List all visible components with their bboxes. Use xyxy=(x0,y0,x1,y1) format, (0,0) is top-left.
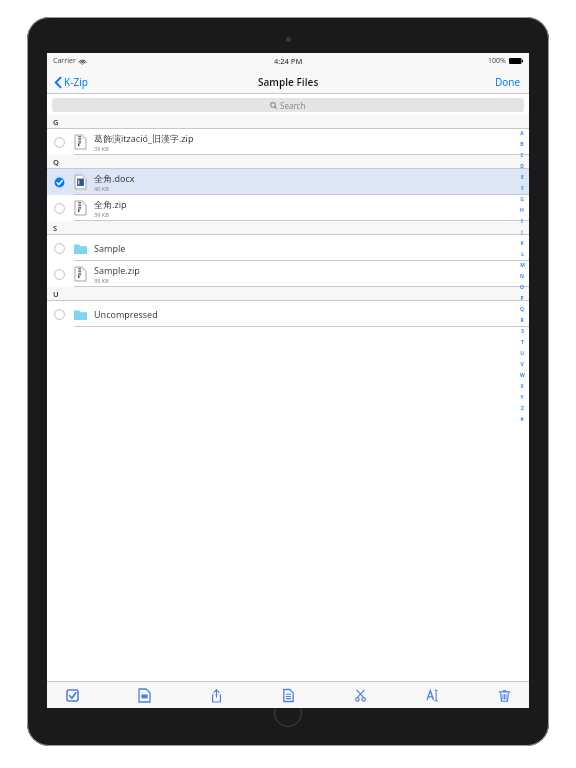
staticText: 39 KB xyxy=(94,211,109,218)
staticText: J xyxy=(521,229,523,236)
staticText: 100% xyxy=(488,56,506,66)
staticText: 4:24 PM xyxy=(274,56,303,66)
staticText: O xyxy=(520,284,524,291)
staticText: Y xyxy=(520,394,524,401)
button[interactable]: Search xyxy=(52,98,524,112)
staticText: Carrier xyxy=(53,56,76,66)
button[interactable]: Delete xyxy=(491,683,517,707)
button[interactable]: Select all xyxy=(59,683,85,707)
staticText: R xyxy=(520,317,524,324)
staticText: # xyxy=(520,416,524,423)
staticText: Q xyxy=(53,157,59,167)
button[interactable]: Sample xyxy=(47,235,529,261)
staticText: E xyxy=(521,174,524,181)
staticText: I xyxy=(521,218,523,225)
staticText: A xyxy=(520,130,524,137)
staticText: X xyxy=(520,383,524,390)
button[interactable]: 葛飾演ització_旧漢字.zip xyxy=(47,129,529,155)
button[interactable]: 全角.docx xyxy=(47,169,529,195)
staticText: B xyxy=(520,141,524,148)
staticText: D xyxy=(520,163,524,170)
button[interactable]: Sample.zip xyxy=(47,261,529,287)
button[interactable]: Compress xyxy=(131,683,157,707)
button[interactable]: K-Zip xyxy=(52,72,91,92)
button[interactable]: Rename xyxy=(419,683,445,707)
staticText: S xyxy=(53,223,58,233)
staticText: 葛飾演ització_旧漢字.zip xyxy=(94,132,194,144)
staticText: Sample Files xyxy=(258,75,319,89)
staticText: G xyxy=(520,196,524,203)
staticText: H xyxy=(520,207,524,214)
staticText: F xyxy=(521,185,524,192)
staticText: 40 KB xyxy=(94,185,109,192)
staticText: W xyxy=(520,372,525,379)
staticText: Sample xyxy=(94,242,126,254)
staticText: M xyxy=(520,262,525,269)
button[interactable]: Done xyxy=(492,72,524,92)
staticText: K-Zip xyxy=(64,75,88,89)
staticText: P xyxy=(520,295,524,302)
staticText: V xyxy=(520,361,524,368)
staticText: C xyxy=(520,152,524,159)
staticText: 39 KB xyxy=(94,277,109,284)
staticText: 39 KB xyxy=(94,145,109,152)
button[interactable]: Uncompressed xyxy=(47,301,529,327)
staticText: Done xyxy=(495,75,521,89)
staticText: Sample.zip xyxy=(94,264,140,276)
button[interactable]: 全角.zip xyxy=(47,195,529,221)
staticText: L xyxy=(521,251,524,258)
staticText: Q xyxy=(520,306,524,313)
staticText: K xyxy=(520,240,524,247)
button[interactable]: Cut xyxy=(347,683,373,707)
button[interactable]: Share xyxy=(203,683,229,707)
staticText: 全角.docx xyxy=(94,172,135,184)
staticText: Search xyxy=(280,100,306,111)
staticText: G xyxy=(53,117,59,127)
staticText: Z xyxy=(521,405,524,412)
staticText: U xyxy=(520,350,524,357)
staticText: S xyxy=(521,328,524,335)
staticText: 全角.zip xyxy=(94,198,127,210)
staticText: U xyxy=(53,289,59,299)
staticText: N xyxy=(520,273,524,280)
button[interactable]: Copy xyxy=(275,683,301,707)
staticText: Uncompressed xyxy=(94,308,158,320)
staticText: T xyxy=(521,339,524,346)
button[interactable]: Alphabet index xyxy=(517,130,527,427)
